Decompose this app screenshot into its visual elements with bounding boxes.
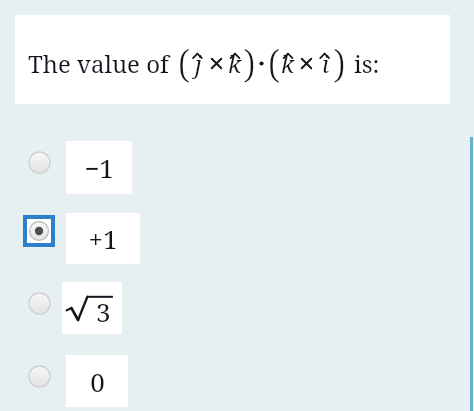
button[interactable]: Option −1 (23, 146, 55, 178)
staticText: is: (354, 47, 380, 80)
staticText: i (322, 48, 329, 79)
staticText: k (281, 48, 295, 79)
staticText: ) (243, 37, 255, 89)
staticText: 3 (96, 294, 111, 329)
staticText: −1 (84, 150, 114, 185)
staticText: ( (268, 37, 280, 89)
staticText: k (228, 48, 242, 79)
staticText: The value of (28, 47, 169, 80)
staticText: +1 (88, 221, 118, 256)
button[interactable]: +1 (66, 213, 140, 264)
staticText: ( (178, 37, 190, 89)
button[interactable]: Option 0 (23, 360, 55, 392)
staticText: j (195, 48, 202, 79)
button[interactable]: Option +1 (23, 215, 55, 247)
button[interactable]: 0 (66, 355, 128, 407)
button[interactable]: −1 (66, 141, 132, 194)
button[interactable]: 3 (62, 282, 122, 334)
button[interactable]: Option √3 (23, 287, 55, 319)
staticText: ) (333, 37, 345, 89)
staticText: 0 (90, 364, 105, 399)
